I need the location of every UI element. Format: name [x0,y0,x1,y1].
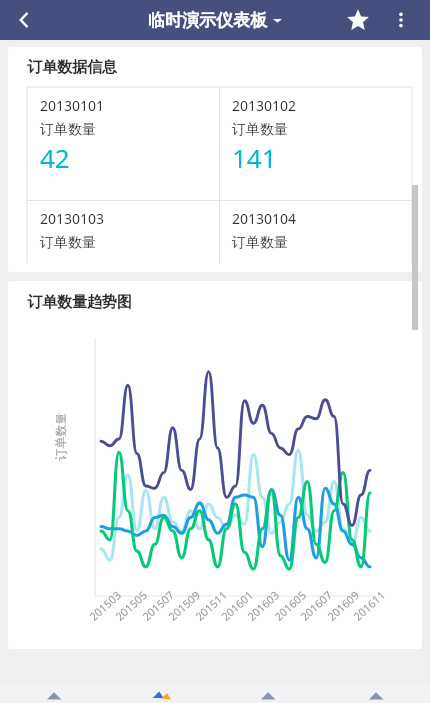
staticText: 201611 [350,587,388,624]
staticText: 订单数量 [232,121,288,139]
button[interactable]: 20130103 [27,200,219,252]
button[interactable]: 20130101 [27,87,219,175]
button[interactable]: Back [4,0,44,40]
button[interactable]: 临时演示仪表板 [148,10,282,31]
button[interactable]: 20130104 [219,200,412,252]
button[interactable]: Home [0,683,107,703]
staticText: 订单数量 [40,121,96,139]
staticText: 20130102 [232,96,297,115]
button[interactable]: 20130102 [219,87,412,175]
staticText: 201609 [324,587,362,624]
button[interactable]: Profile [322,683,430,703]
staticText: 201511 [192,587,230,624]
staticText: 201601 [218,587,256,624]
staticText: 订单数量 [232,234,288,252]
button[interactable]: 订单数据信息 [8,47,422,272]
staticText: 201507 [139,587,177,624]
staticText: 201505 [112,587,150,624]
staticText: 订单数据信息 [27,58,117,77]
staticText: 201603 [244,587,282,624]
staticText: 订单数量趋势图 [27,293,132,312]
button[interactable]: Dashboard [107,683,214,703]
staticText: 201503 [86,587,124,624]
staticText: 临时演示仪表板 [148,10,267,31]
staticText: 订单数量 [52,412,67,460]
staticText: 141 [232,140,277,175]
staticText: 订单数量 [40,234,96,252]
staticText: 201509 [165,587,203,624]
staticText: 20130101 [40,96,105,115]
staticText: 201605 [271,587,309,624]
staticText: 20130103 [40,209,105,228]
button[interactable]: More options [381,0,421,40]
button[interactable]: 订单数量趋势图 [8,281,422,649]
button[interactable]: Reports [214,683,322,703]
staticText: 201607 [297,587,335,624]
staticText: 20130104 [232,209,297,228]
staticText: 42 [40,140,70,175]
button[interactable]: Favorite [338,0,378,40]
